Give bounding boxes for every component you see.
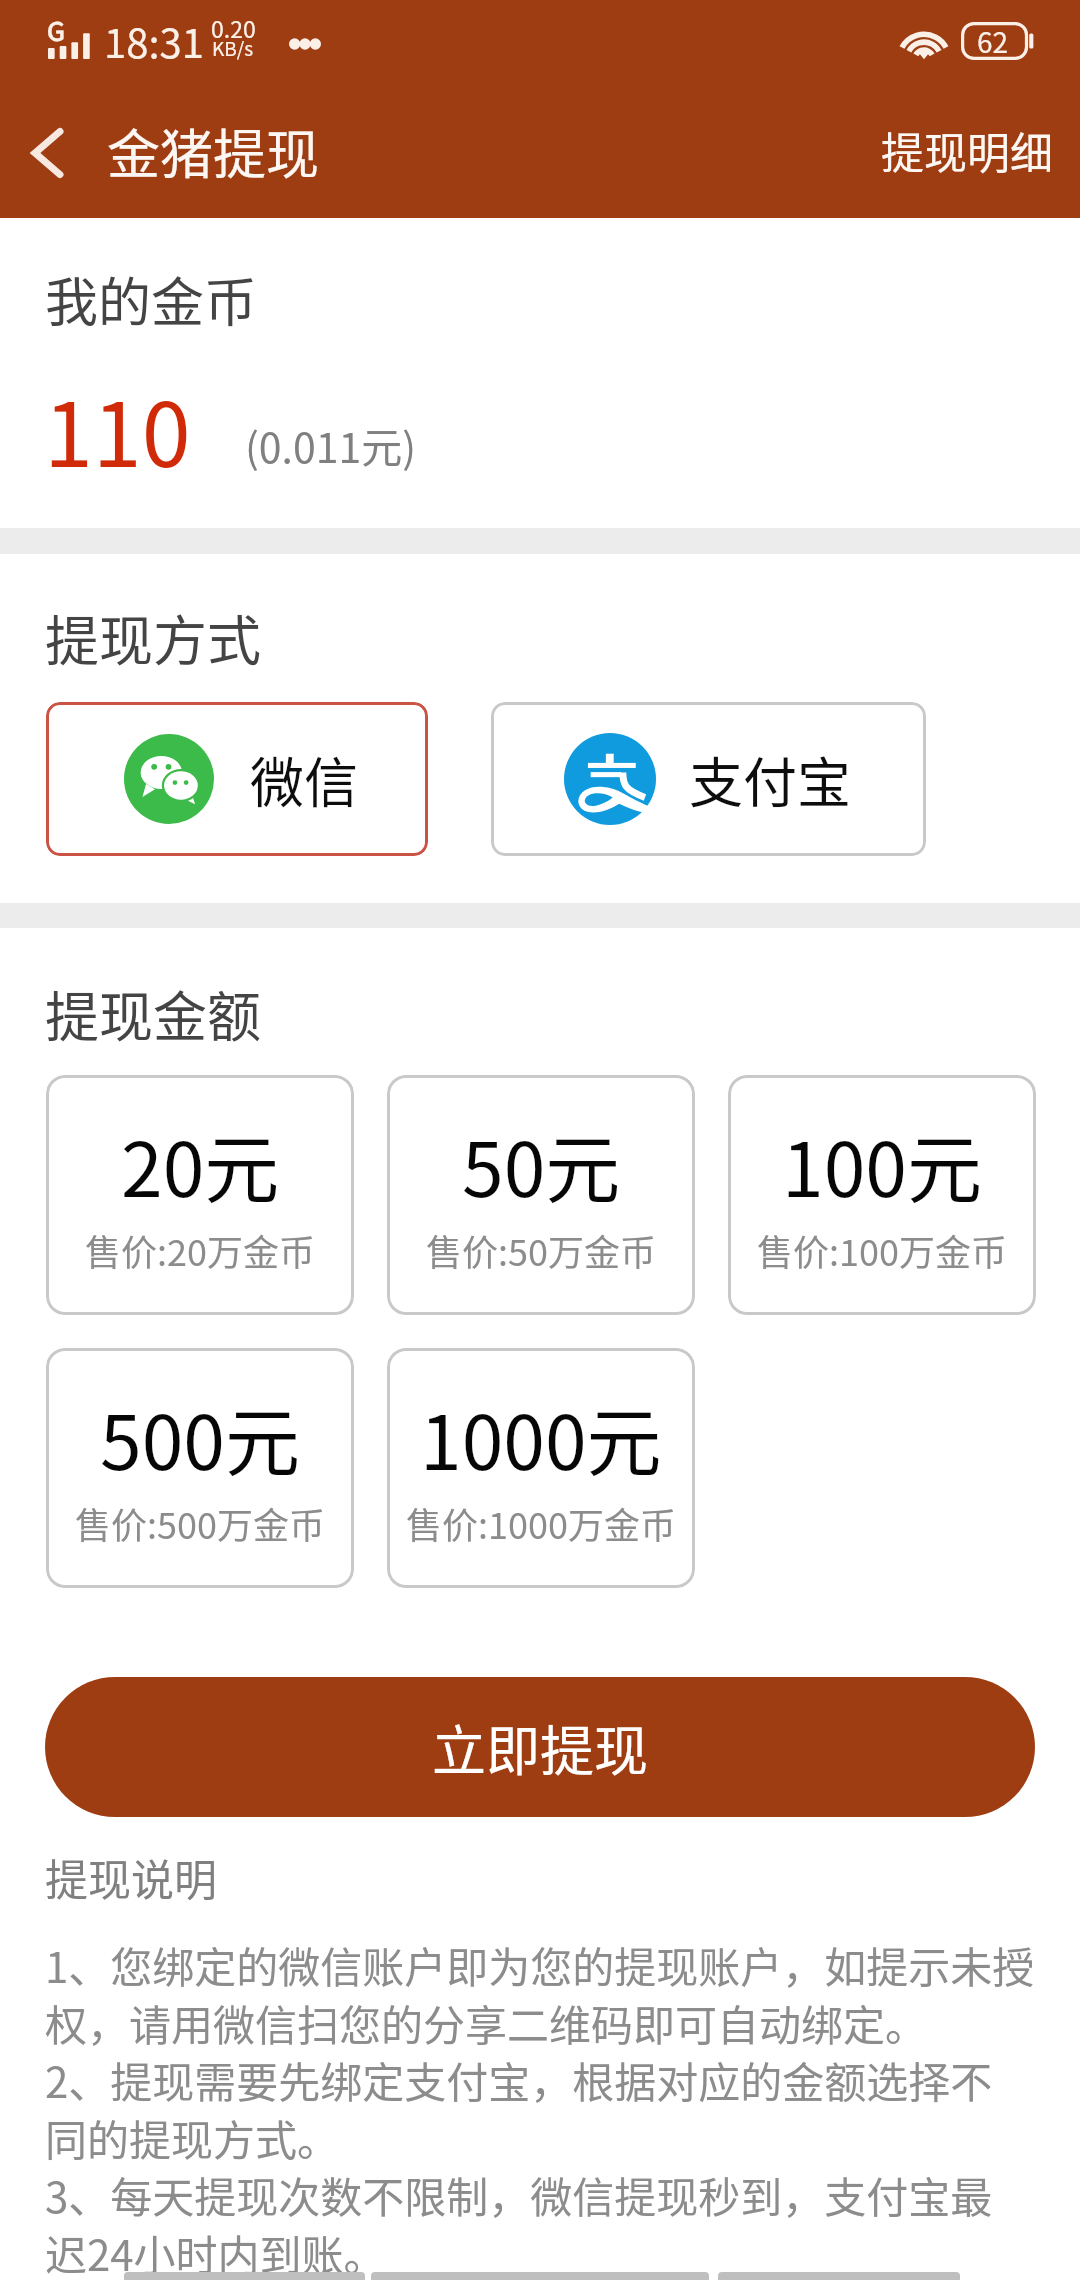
staticText: 500元 [100, 1383, 300, 1492]
button[interactable]: 提现明细 [851, 94, 1080, 212]
button[interactable]: 50元 [387, 1075, 695, 1315]
button[interactable]: 支付宝 [491, 702, 926, 856]
staticText: 18:31 [104, 12, 204, 70]
staticText: 我的金币 [45, 261, 257, 338]
staticText: G [47, 11, 65, 49]
button[interactable]: 20元 [46, 1075, 354, 1315]
staticText: 同的提现方式。 [45, 2107, 340, 2168]
staticText: 提现说明 [45, 1846, 217, 1908]
button[interactable]: 微信 [46, 702, 428, 856]
staticText: 3、每天提现次数不限制，微信提现秒到，支付宝最 [45, 2164, 993, 2225]
button[interactable]: Back [0, 88, 94, 218]
staticText: 微信 [250, 740, 358, 818]
staticText: 1、您绑定的微信账户即为您的提现账户，如提示未授 [45, 1934, 1035, 1995]
button[interactable]: 立即提现 [45, 1677, 1035, 1817]
staticText: 2、提现需要先绑定支付宝，根据对应的金额选择不 [45, 2049, 993, 2110]
staticText: 1000元 [420, 1383, 662, 1492]
staticText: 售价:50万金币 [426, 1224, 656, 1276]
staticText: 立即提现 [432, 1708, 648, 1786]
staticText: 售价:1000万金币 [406, 1497, 676, 1549]
staticText: 20元 [121, 1110, 280, 1219]
staticText: 0.20 [211, 11, 256, 44]
staticText: 提现金额 [45, 974, 261, 1052]
staticText: KB/s [212, 34, 254, 62]
staticText: 售价:500万金币 [75, 1497, 325, 1549]
staticText: 迟24小时内到账。 [45, 2222, 386, 2280]
staticText: 金猪提现 [107, 113, 319, 190]
button[interactable]: 100元 [728, 1075, 1036, 1315]
staticText: 提现方式 [45, 598, 261, 676]
staticText: 售价:20万金币 [85, 1224, 315, 1276]
staticText: 62 [977, 21, 1009, 62]
button[interactable]: 1000元 [387, 1348, 695, 1588]
staticText: 支付宝 [689, 740, 851, 818]
staticText: (0.011元) [245, 415, 417, 474]
button[interactable]: 500元 [46, 1348, 354, 1588]
staticText: 110 [44, 365, 191, 492]
staticText: 100元 [782, 1110, 982, 1219]
staticText: 售价:100万金币 [757, 1224, 1007, 1276]
staticText: 权，请用微信扫您的分享二维码即可自动绑定。 [45, 1992, 928, 2053]
staticText: 50元 [462, 1110, 621, 1219]
